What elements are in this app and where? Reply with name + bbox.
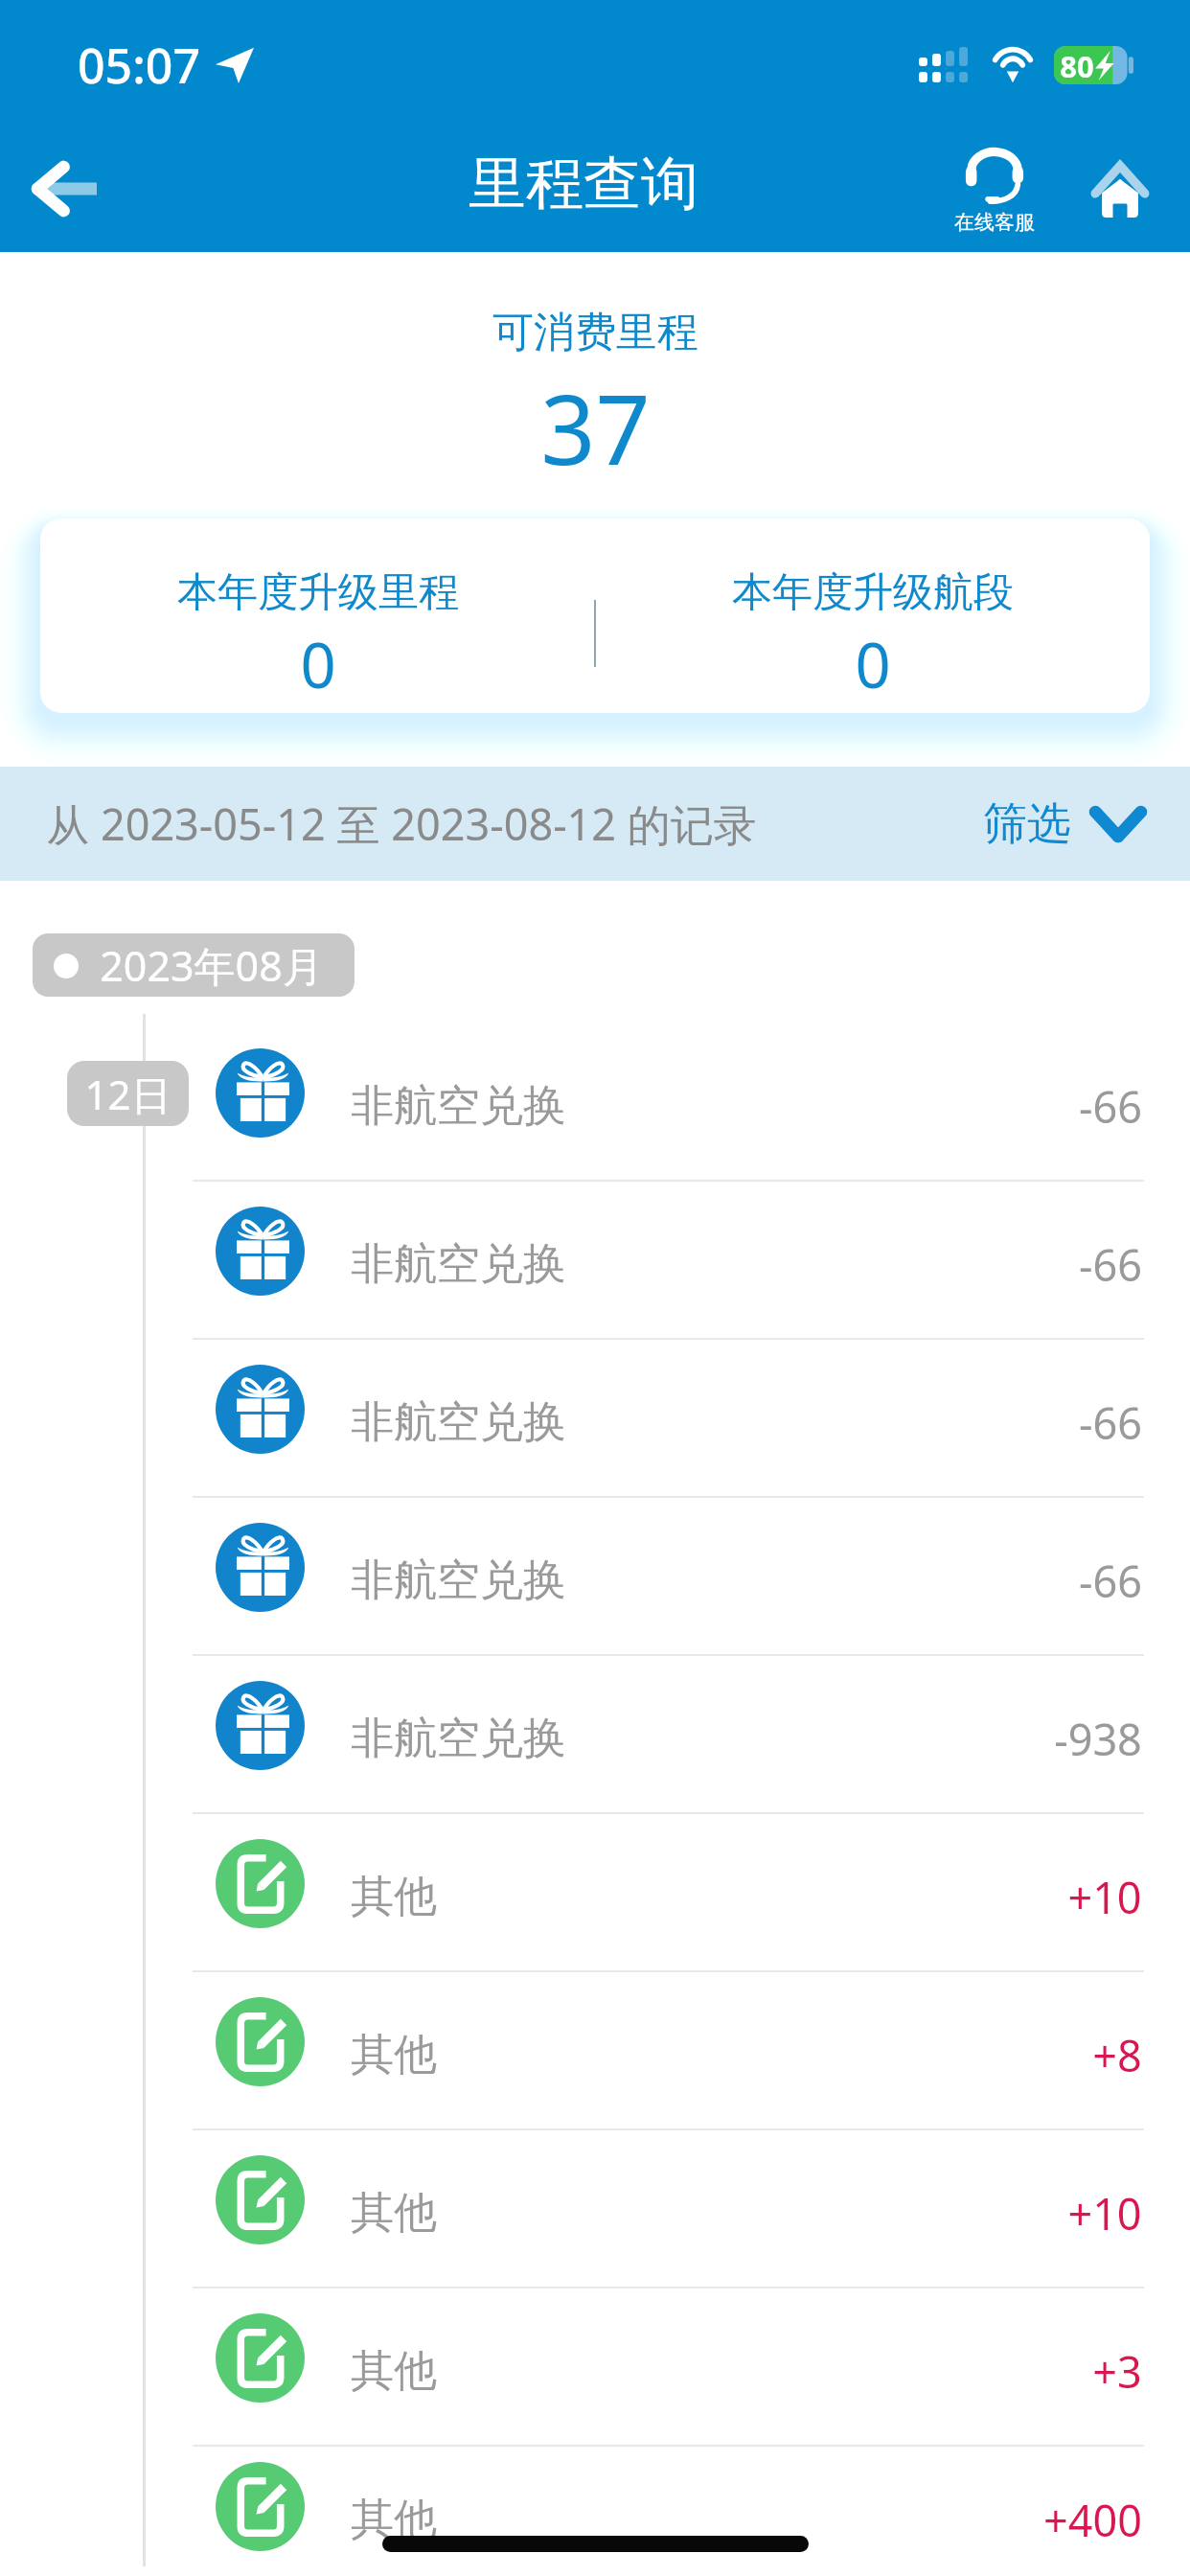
staticText: 非航空兑换 xyxy=(351,1395,566,1450)
button[interactable]: 其他 xyxy=(0,2437,1190,2576)
button[interactable]: 其他 xyxy=(0,1805,1190,1963)
staticText: +3 xyxy=(1092,2342,1142,2401)
staticText: 筛选 xyxy=(983,796,1071,852)
staticText: 在线客服 xyxy=(954,210,1035,235)
staticText: 0 xyxy=(855,622,891,707)
staticText: 非航空兑换 xyxy=(351,1553,566,1608)
button[interactable]: 非航空兑换 xyxy=(0,1330,1190,1488)
staticText: 其他 xyxy=(351,2493,437,2547)
staticText: 从 2023-05-12 至 2023-08-12 的记录 xyxy=(46,794,757,853)
staticText: 05:07 xyxy=(78,33,200,98)
staticText: 0 xyxy=(300,622,336,707)
staticText: -66 xyxy=(1079,1235,1142,1294)
staticText: -66 xyxy=(1079,1393,1142,1452)
staticText: -66 xyxy=(1079,1552,1142,1610)
staticText: 本年度升级里程 xyxy=(177,567,459,618)
staticText: 其他 xyxy=(351,2344,437,2399)
button[interactable]: 其他 xyxy=(0,1963,1190,2121)
staticText: 80 xyxy=(1060,46,1094,84)
staticText: 里程查询 xyxy=(469,148,698,220)
button[interactable]: Back xyxy=(13,136,119,241)
staticText: 可消费里程 xyxy=(492,307,698,358)
staticText: +10 xyxy=(1067,2184,1142,2242)
button[interactable]: 其他 xyxy=(0,2121,1190,2279)
staticText: 37 xyxy=(540,362,651,493)
button[interactable]: Home xyxy=(1079,148,1161,230)
button[interactable]: 非航空兑换 xyxy=(0,1488,1190,1646)
button[interactable]: 12日 xyxy=(0,1014,1190,1172)
staticText: -66 xyxy=(1079,1077,1142,1136)
staticText: 其他 xyxy=(351,2186,437,2241)
button[interactable]: 非航空兑换 xyxy=(0,1646,1190,1805)
staticText: +400 xyxy=(1043,2491,1142,2549)
button[interactable]: 非航空兑换 xyxy=(0,1172,1190,1330)
staticText: 非航空兑换 xyxy=(351,1079,566,1134)
button[interactable]: 其他 xyxy=(0,2279,1190,2437)
button[interactable]: 筛选 xyxy=(983,796,1144,852)
button[interactable]: 在线客服 xyxy=(947,140,1042,226)
staticText: 非航空兑换 xyxy=(351,1237,566,1292)
staticText: +8 xyxy=(1092,2026,1142,2084)
staticText: 非航空兑换 xyxy=(351,1712,566,1766)
staticText: 其他 xyxy=(351,1870,437,1924)
staticText: 其他 xyxy=(351,2028,437,2082)
staticText: 2023年08月 xyxy=(100,937,324,994)
staticText: +10 xyxy=(1067,1868,1142,1926)
staticText: -938 xyxy=(1054,1710,1142,1768)
staticText: 本年度升级航段 xyxy=(732,567,1014,618)
staticText: 12日 xyxy=(84,1067,172,1121)
